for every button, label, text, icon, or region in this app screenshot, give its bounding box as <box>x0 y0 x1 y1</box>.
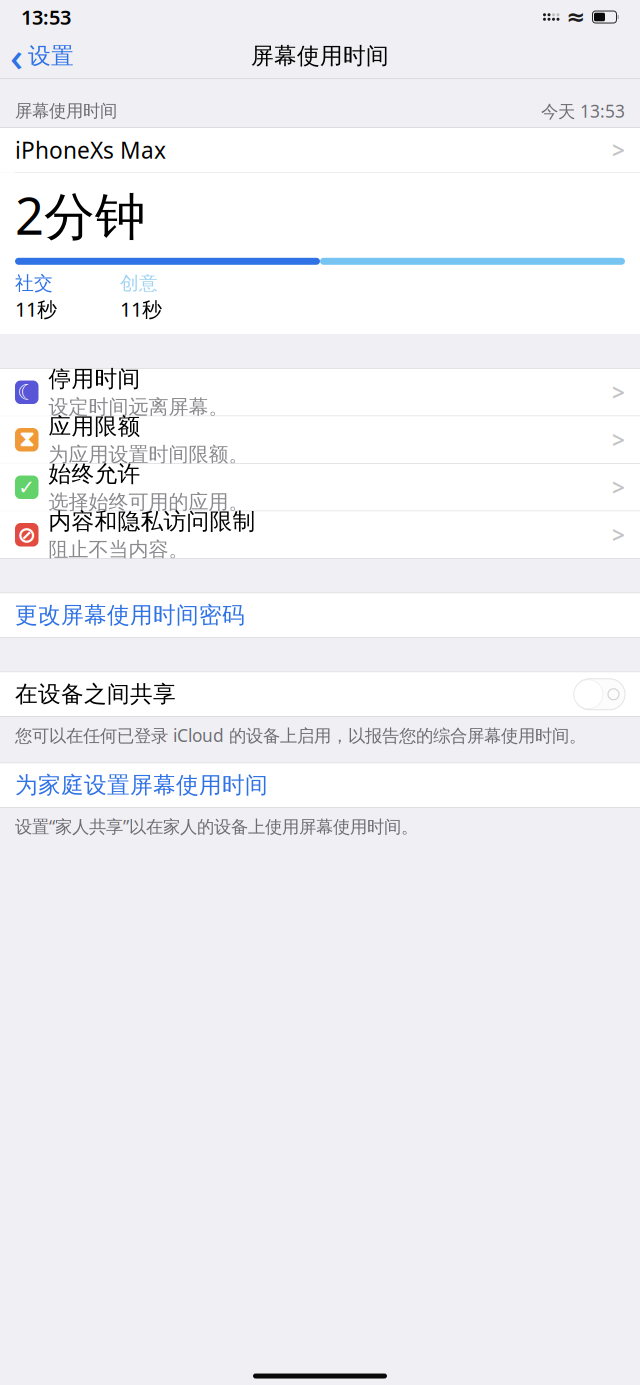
button[interactable]: ☾ <box>0 369 640 416</box>
staticText: > <box>612 135 625 165</box>
button[interactable]: ‹ <box>0 23 74 88</box>
staticText: 您可以在任何已登录 iCloud 的设备上启用，以报告您的综合屏幕使用时间。 <box>15 724 586 747</box>
staticText: 在设备之间共享 <box>15 680 176 708</box>
staticText: 始终允许 <box>48 460 140 488</box>
staticText: 屏幕使用时间 <box>15 100 117 122</box>
staticText: 选择始终可用的应用。 <box>48 490 248 514</box>
button[interactable]: 在设备之间共享 <box>0 672 640 716</box>
staticText: > <box>612 425 625 455</box>
staticText: 设置 <box>28 42 74 70</box>
staticText: 设定时间远离屏幕。 <box>48 395 228 419</box>
staticText: 为应用设置时间限额。 <box>48 442 248 467</box>
staticText: ⊘ <box>17 522 36 548</box>
staticText: 屏幕使用时间 <box>251 42 389 70</box>
staticText: 停用时间 <box>48 365 140 393</box>
button[interactable]: ✓ <box>0 464 640 511</box>
staticText: 13:53 <box>21 4 71 30</box>
staticText: ✓ <box>18 476 35 499</box>
staticText: 为家庭设置屏幕使用时间 <box>15 771 268 799</box>
staticText: 创意 <box>120 272 158 295</box>
staticText: ☾ <box>17 380 36 404</box>
staticText: ‹ <box>10 29 23 82</box>
staticText: 设置“家人共享”以在家人的设备上使用屏幕使用时间。 <box>15 815 418 838</box>
button[interactable]: 更改屏幕使用时间密码 <box>0 593 640 637</box>
staticText: 2分钟 <box>15 181 146 249</box>
staticText: 阻止不当内容。 <box>48 537 188 562</box>
staticText: ≈ <box>566 4 585 30</box>
staticText: > <box>612 377 625 407</box>
button[interactable]: ⧗ <box>0 416 640 463</box>
staticText: 应用限额 <box>48 413 140 440</box>
staticText: 11秒 <box>15 296 57 322</box>
staticText: 今天 13:53 <box>541 99 625 122</box>
staticText: 更改屏幕使用时间密码 <box>15 601 245 629</box>
staticText: > <box>612 520 625 550</box>
staticText: ⧗ <box>19 429 34 450</box>
button[interactable]: iPhoneXs Max <box>0 128 640 172</box>
staticText: 内容和隐私访问限制 <box>48 508 255 535</box>
staticText: 社交 <box>15 272 53 295</box>
button[interactable]: ⊘ <box>0 511 640 558</box>
staticText: > <box>612 472 625 502</box>
button[interactable]: 为家庭设置屏幕使用时间 <box>0 763 640 807</box>
staticText: iPhoneXs Max <box>15 135 166 165</box>
staticText: 11秒 <box>120 296 162 322</box>
